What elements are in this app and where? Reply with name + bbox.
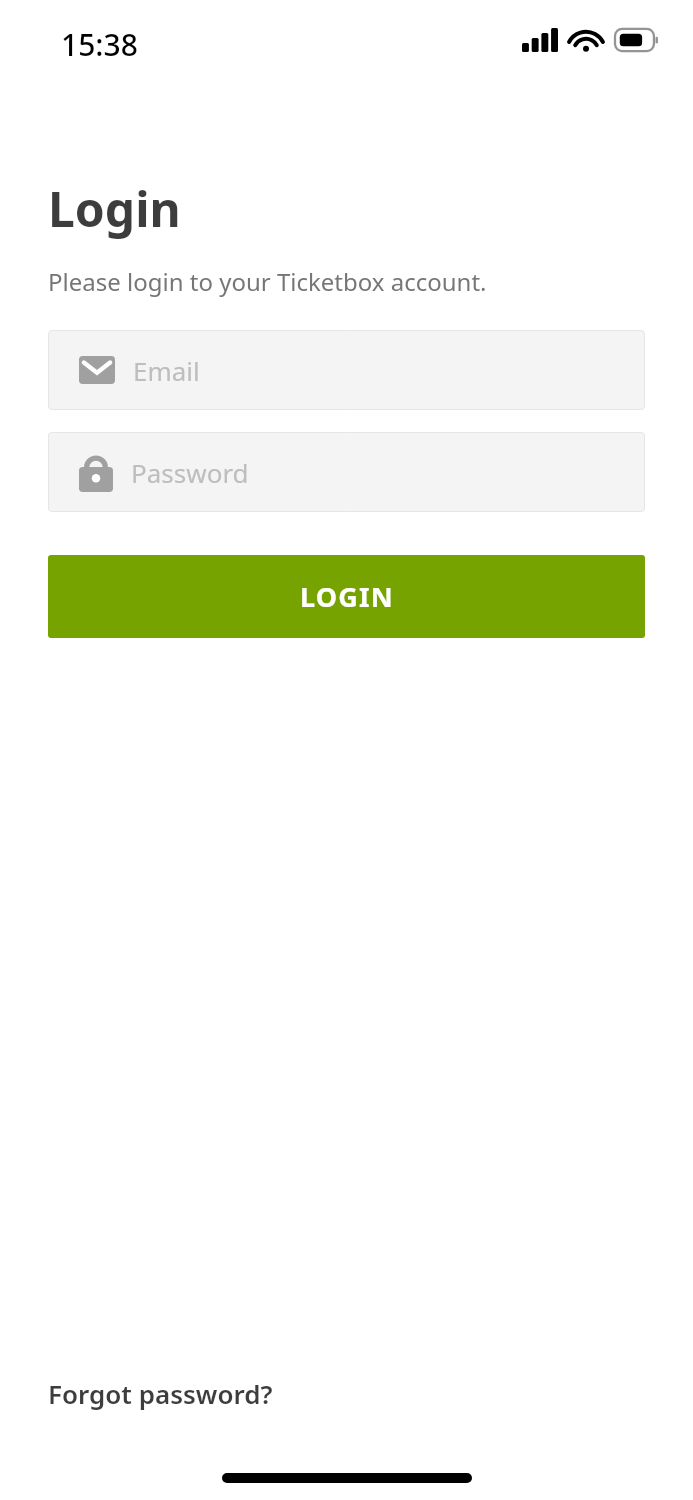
staticText: LOGIN xyxy=(300,578,394,615)
staticText: Password xyxy=(131,455,249,490)
button[interactable]: LOGIN xyxy=(48,555,645,638)
button[interactable]: Password xyxy=(48,432,645,512)
button[interactable]: Email xyxy=(48,330,645,410)
staticText: Forgot password? xyxy=(48,1376,273,1411)
button[interactable]: Forgot password? xyxy=(48,1374,273,1413)
staticText: 15:38 xyxy=(61,24,138,65)
staticText: Email xyxy=(133,353,200,388)
staticText: Please login to your Ticketbox account. xyxy=(48,265,487,298)
staticText: Login xyxy=(48,176,181,241)
